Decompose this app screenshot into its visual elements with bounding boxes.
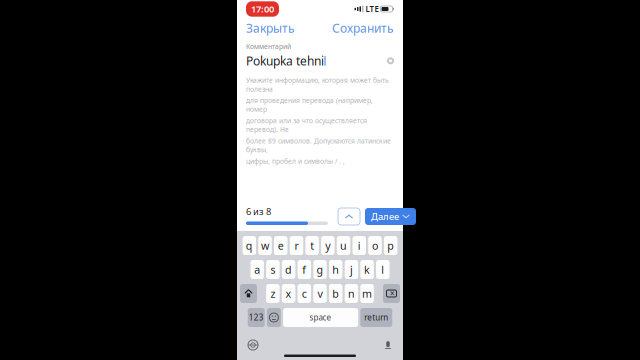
staticText: g bbox=[316, 262, 323, 277]
button[interactable]: a bbox=[250, 260, 264, 279]
staticText: k bbox=[364, 262, 370, 277]
button[interactable]: b bbox=[329, 284, 342, 303]
staticText: m bbox=[362, 286, 372, 301]
staticText: a bbox=[254, 262, 260, 277]
button[interactable]: Диктовка bbox=[383, 339, 393, 350]
button[interactable]: Сохранить bbox=[332, 16, 394, 40]
button[interactable]: x bbox=[282, 284, 295, 303]
staticText: цифры, пробел и символы / . , bbox=[246, 157, 345, 165]
button[interactable]: i bbox=[352, 236, 366, 255]
button[interactable]: o bbox=[368, 236, 382, 255]
staticText: Комментарий bbox=[246, 42, 291, 51]
button[interactable]: Закрыть bbox=[246, 16, 295, 40]
button[interactable]: Эмодзи bbox=[267, 308, 281, 327]
staticText: v bbox=[317, 286, 322, 301]
staticText: z bbox=[270, 286, 275, 301]
button[interactable]: z bbox=[266, 284, 280, 303]
button[interactable]: f bbox=[297, 260, 311, 279]
staticText: 17:00 bbox=[251, 3, 274, 15]
staticText: b bbox=[332, 286, 339, 301]
button[interactable]: y bbox=[321, 236, 335, 255]
staticText: t bbox=[310, 238, 314, 253]
staticText: Укажите информацию, которая может быть п… bbox=[246, 76, 389, 93]
staticText: p bbox=[387, 238, 394, 253]
button[interactable]: j bbox=[345, 260, 358, 279]
button[interactable]: d bbox=[282, 260, 295, 279]
button[interactable]: l bbox=[376, 260, 390, 279]
staticText: s bbox=[270, 262, 275, 277]
button[interactable]: Далее bbox=[365, 208, 416, 225]
staticText: f bbox=[302, 262, 306, 277]
button[interactable]: h bbox=[329, 260, 342, 279]
staticText: l bbox=[381, 262, 384, 277]
staticText: i bbox=[358, 238, 361, 253]
staticText: Закрыть bbox=[246, 20, 295, 36]
button[interactable]: space bbox=[283, 308, 358, 327]
button[interactable]: u bbox=[337, 236, 350, 255]
button[interactable]: v bbox=[313, 284, 327, 303]
staticText: u bbox=[340, 238, 347, 253]
staticText: w bbox=[261, 238, 269, 253]
button[interactable]: p bbox=[384, 236, 397, 255]
staticText: Далее bbox=[371, 210, 399, 223]
button[interactable]: k bbox=[360, 260, 374, 279]
button[interactable]: Сменить язык bbox=[247, 339, 259, 351]
staticText: q bbox=[246, 238, 253, 253]
button[interactable]: m bbox=[360, 284, 374, 303]
button[interactable]: t bbox=[305, 236, 319, 255]
staticText: Pokupka tehni bbox=[246, 53, 324, 69]
button[interactable]: s bbox=[266, 260, 280, 279]
staticText: y bbox=[325, 238, 330, 253]
button[interactable]: g bbox=[313, 260, 327, 279]
staticText: j bbox=[350, 262, 353, 277]
button[interactable]: c bbox=[298, 284, 311, 303]
button[interactable]: Удалить bbox=[383, 284, 400, 303]
staticText: h bbox=[332, 262, 339, 277]
staticText: x bbox=[286, 286, 292, 301]
button[interactable]: return bbox=[360, 308, 392, 327]
staticText: space bbox=[310, 312, 332, 323]
button[interactable]: Shift bbox=[240, 284, 257, 303]
staticText: LTE bbox=[365, 4, 378, 14]
staticText: 123 bbox=[249, 312, 264, 323]
staticText: return bbox=[364, 312, 388, 323]
button[interactable]: 123 bbox=[248, 308, 265, 327]
staticText: 6 из 8 bbox=[246, 205, 271, 217]
staticText: более 89 символов. Допускаются латинские… bbox=[246, 136, 391, 154]
staticText: × bbox=[390, 288, 395, 299]
button[interactable]: w bbox=[258, 236, 272, 255]
staticText: Сохранить bbox=[332, 20, 394, 36]
staticText: o bbox=[372, 238, 378, 253]
staticText: n bbox=[348, 286, 355, 301]
staticText: для проведения перевода (например, номер bbox=[246, 96, 373, 114]
staticText: d bbox=[285, 262, 292, 277]
button[interactable]: r bbox=[290, 236, 303, 255]
button[interactable]: Предыдущий шаг bbox=[338, 208, 360, 225]
button[interactable]: Очистить bbox=[387, 57, 394, 64]
staticText: r bbox=[294, 238, 298, 253]
button[interactable]: e bbox=[274, 236, 287, 255]
staticText: e bbox=[278, 238, 284, 253]
button[interactable]: n bbox=[345, 284, 358, 303]
staticText: c bbox=[302, 286, 307, 301]
button[interactable]: q bbox=[243, 236, 256, 255]
staticText: договора или за что осуществляется перев… bbox=[246, 116, 367, 134]
